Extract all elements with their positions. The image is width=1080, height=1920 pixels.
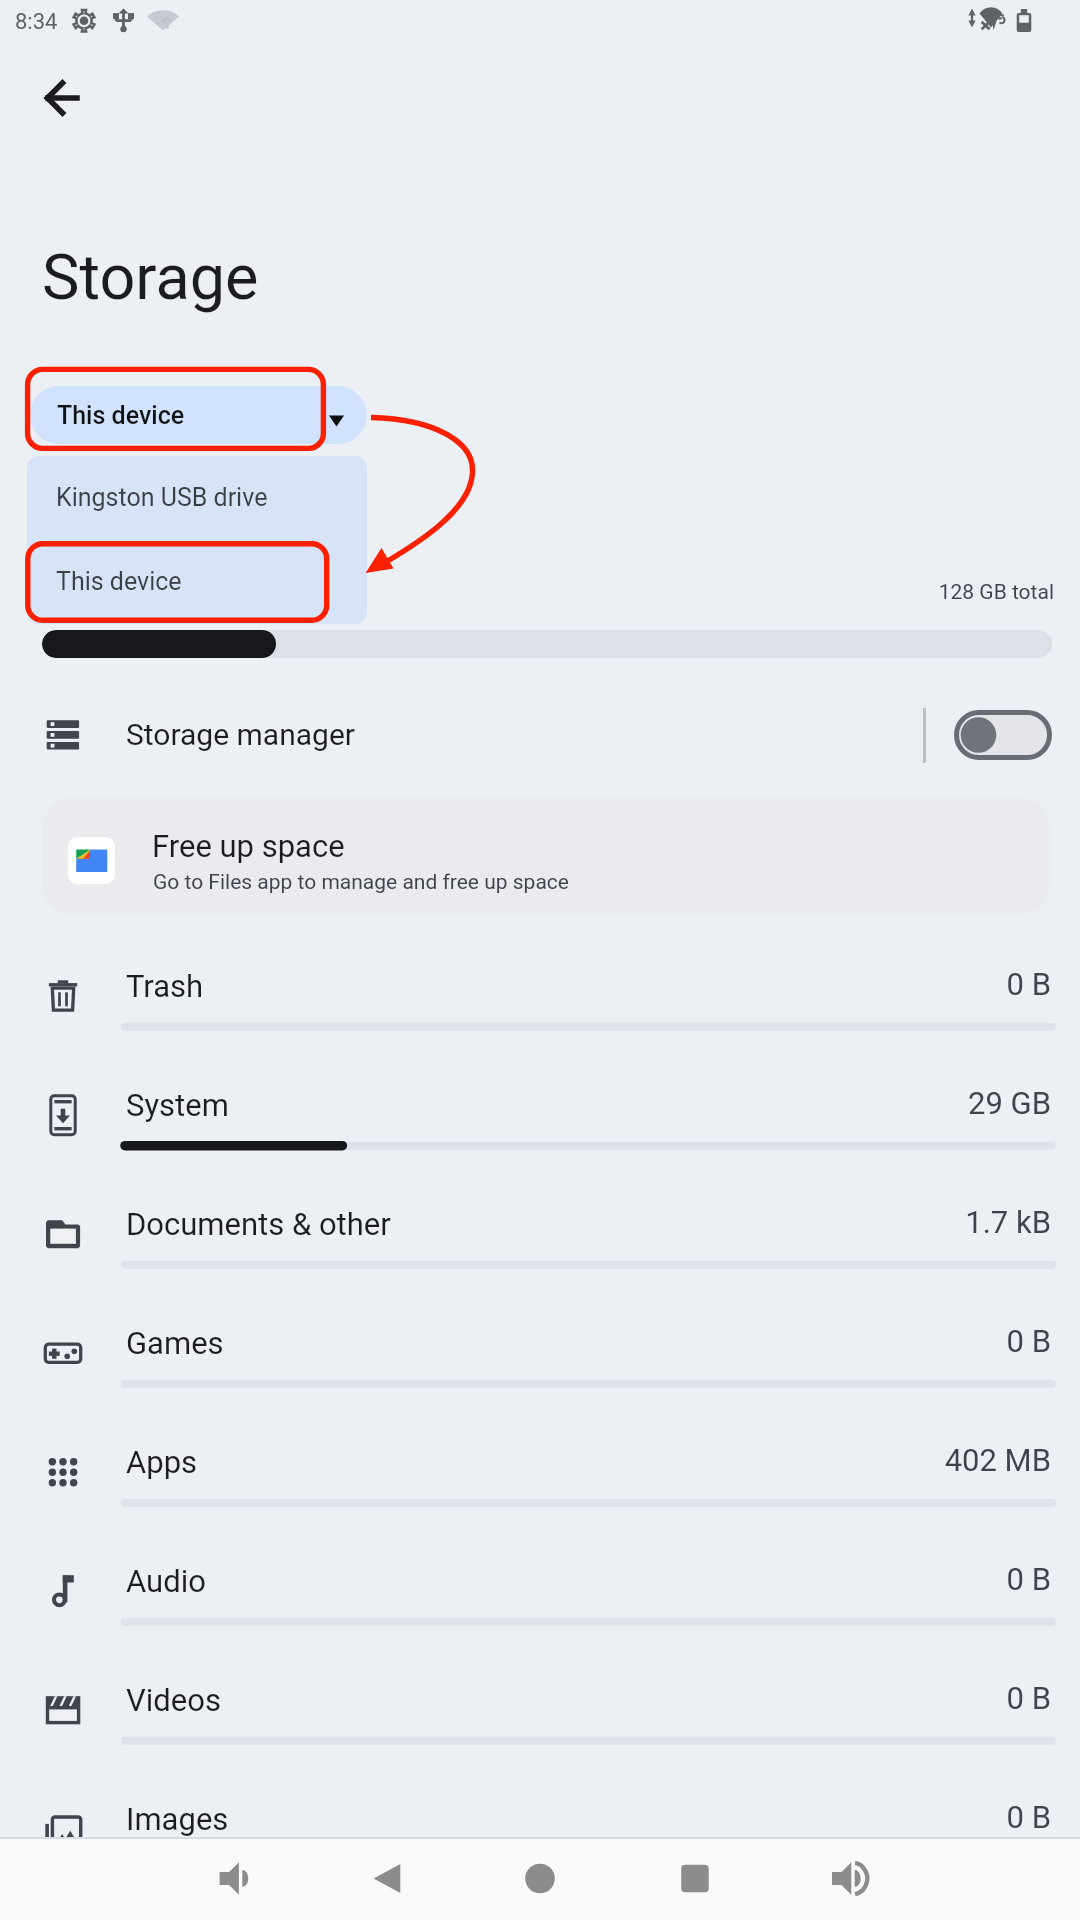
button[interactable]: Back [346,1837,428,1920]
button[interactable]: This device [30,386,367,444]
button[interactable]: Images [0,1783,1080,1902]
staticText: This device [57,401,185,430]
button[interactable]: Volume down [193,1837,275,1920]
staticText: Go to Files app to manage and free up sp… [153,870,569,895]
staticText: Games [126,1325,224,1361]
button[interactable]: System [0,1069,1080,1188]
staticText: Audio [126,1563,206,1599]
staticText: Videos [126,1682,221,1718]
button[interactable]: Videos [0,1664,1080,1783]
button[interactable]: Storage manager [0,688,1080,782]
staticText: 128 GB total [754,580,1054,605]
staticText: 402 MB [751,1442,1051,1478]
staticText: Storage manager [126,717,355,752]
staticText: 0 B [751,966,1051,1002]
staticText: Trash [126,968,204,1004]
staticText: Storage [42,241,259,315]
staticText: Apps [126,1444,198,1480]
button[interactable]: Apps [0,1426,1080,1545]
button[interactable]: Kingston USB drive [27,456,367,540]
button[interactable]: Home [499,1837,581,1920]
button[interactable]: Documents & other [0,1188,1080,1307]
button[interactable]: Back [20,56,104,140]
staticText: Free up space [152,828,345,864]
button[interactable]: Free up space [42,798,1049,914]
button[interactable]: Recents [654,1837,736,1920]
staticText: Documents & other [126,1206,391,1242]
staticText: 0 B [751,1680,1051,1716]
staticText: 8:34 [15,9,58,35]
button[interactable]: Audio [0,1545,1080,1664]
button[interactable]: Games [0,1307,1080,1426]
staticText: 1.7 kB [751,1204,1051,1240]
button[interactable]: This device [27,540,367,624]
staticText: System [126,1087,229,1123]
staticText: 0 B [751,1323,1051,1359]
button[interactable]: Trash [0,950,1080,1069]
staticText: 0 B [751,1561,1051,1597]
staticText: 29 GB [751,1085,1051,1121]
staticText: This device [56,567,182,596]
button[interactable]: Storage manager toggle [954,710,1052,760]
staticText: Kingston USB drive [56,483,268,512]
button[interactable]: Volume up [807,1837,889,1920]
staticText: 0 B [751,1799,1051,1835]
staticText: Images [126,1801,229,1837]
